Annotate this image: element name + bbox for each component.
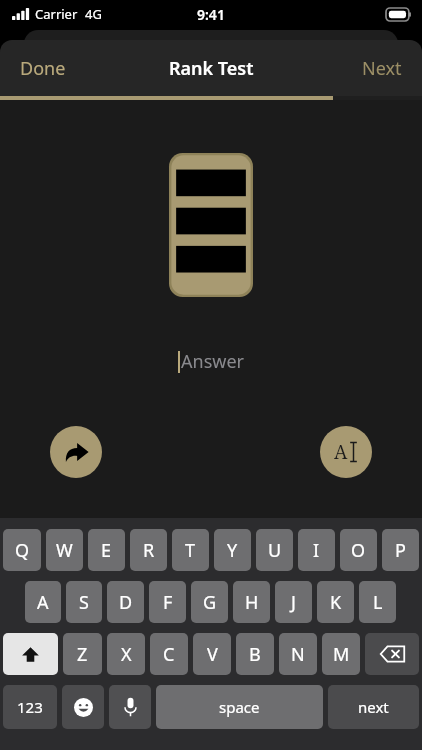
button[interactable]: R — [130, 529, 167, 571]
button[interactable]: K — [317, 581, 354, 623]
staticText: 123 — [17, 697, 43, 717]
staticText: Done — [20, 56, 66, 81]
button[interactable]: Q — [3, 529, 41, 571]
button[interactable]: Text input — [320, 426, 372, 478]
staticText: L — [373, 590, 383, 615]
staticText: H — [245, 590, 259, 615]
staticText: K — [330, 590, 342, 615]
button[interactable]: Emoji — [62, 685, 104, 729]
button[interactable]: F — [149, 581, 186, 623]
button[interactable]: Backspace — [365, 633, 419, 675]
staticText: O — [351, 538, 366, 563]
staticText: X — [121, 642, 132, 667]
button[interactable]: space — [156, 685, 323, 729]
button[interactable]: S — [66, 581, 102, 623]
staticText: P — [395, 538, 406, 563]
staticText: G — [203, 590, 217, 615]
button[interactable]: U — [256, 529, 293, 571]
button[interactable]: B — [236, 633, 274, 675]
button[interactable]: Shift — [3, 633, 58, 675]
staticText: Answer — [181, 349, 244, 374]
button[interactable]: J — [275, 581, 312, 623]
staticText: T — [185, 538, 196, 563]
button[interactable]: next — [328, 685, 419, 729]
staticText: F — [163, 590, 173, 615]
staticText: W — [56, 538, 73, 563]
button[interactable]: 123 — [3, 685, 57, 729]
staticText: J — [291, 590, 296, 615]
staticText: C — [163, 642, 175, 667]
staticText: Z — [77, 642, 88, 667]
button[interactable]: N — [279, 633, 317, 675]
button[interactable]: D — [107, 581, 144, 623]
button[interactable]: A — [25, 581, 61, 623]
staticText: Q — [15, 538, 30, 563]
staticText: Y — [227, 538, 238, 563]
button[interactable]: Next — [348, 48, 416, 89]
staticText: V — [207, 642, 218, 667]
button[interactable]: Dictation — [109, 685, 151, 729]
staticText: 9:41 — [197, 5, 225, 24]
staticText: E — [101, 538, 112, 563]
button[interactable]: O — [340, 529, 377, 571]
button[interactable]: X — [107, 633, 145, 675]
staticText: Carrier — [35, 5, 78, 23]
staticText: D — [119, 590, 133, 615]
staticText: Rank Test — [169, 56, 254, 81]
staticText: space — [219, 697, 260, 717]
button[interactable]: C — [150, 633, 188, 675]
button[interactable]: M — [322, 633, 360, 675]
staticText: R — [143, 538, 155, 563]
button[interactable]: Y — [214, 529, 251, 571]
button[interactable]: Share — [50, 426, 102, 478]
staticText: I — [313, 538, 320, 563]
staticText: A — [37, 590, 49, 615]
button[interactable]: G — [191, 581, 228, 623]
staticText: U — [268, 538, 282, 563]
staticText: 4G — [85, 5, 102, 23]
staticText: N — [291, 642, 305, 667]
staticText: M — [333, 642, 350, 667]
button[interactable]: E — [88, 529, 125, 571]
button[interactable]: T — [172, 529, 209, 571]
staticText: next — [358, 697, 389, 717]
button[interactable]: Z — [63, 633, 102, 675]
button[interactable]: Answer — [0, 349, 422, 374]
button[interactable]: W — [46, 529, 83, 571]
staticText: B — [249, 642, 261, 667]
button[interactable]: V — [193, 633, 231, 675]
button[interactable]: P — [382, 529, 419, 571]
staticText: Next — [362, 56, 402, 81]
button[interactable]: I — [298, 529, 335, 571]
staticText: S — [79, 590, 89, 615]
button[interactable]: H — [233, 581, 270, 623]
button[interactable]: L — [359, 581, 396, 623]
staticText: A — [334, 439, 348, 465]
button[interactable]: Done — [6, 48, 80, 89]
